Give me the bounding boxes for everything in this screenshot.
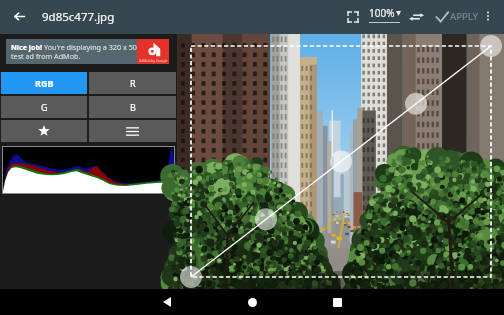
staticText: B — [130, 101, 136, 113]
button[interactable]: B — [89, 96, 176, 118]
staticText: R — [130, 77, 136, 89]
button[interactable]: Fullscreen — [339, 3, 366, 30]
button[interactable]: Favorite — [1, 120, 87, 142]
button[interactable]: Home — [239, 289, 265, 315]
staticText: AdMob by Google — [139, 58, 168, 63]
staticText: Nice job! You're displaying a 320 x 50 t… — [11, 42, 137, 62]
button[interactable]: More options — [475, 3, 501, 29]
button[interactable]: Nice job! You're displaying a 320 x 50 t… — [6, 39, 169, 64]
button[interactable]: 100% — [369, 6, 401, 24]
button[interactable]: Flip horizontally — [403, 3, 430, 30]
staticText: RGB — [35, 77, 54, 89]
button[interactable]: Back — [154, 289, 180, 315]
staticText: 100% — [369, 6, 395, 20]
button[interactable]: Menu — [89, 120, 176, 142]
button[interactable]: Back — [5, 2, 33, 30]
button[interactable]: RGB — [1, 72, 87, 94]
staticText: G — [41, 101, 48, 113]
staticText: 9d85c477.jpg — [42, 9, 115, 25]
button[interactable]: R — [89, 72, 176, 94]
button[interactable]: APPLY — [433, 3, 481, 30]
staticText: APPLY — [450, 10, 479, 23]
button[interactable]: G — [1, 96, 87, 118]
button[interactable]: Recents — [324, 289, 350, 315]
